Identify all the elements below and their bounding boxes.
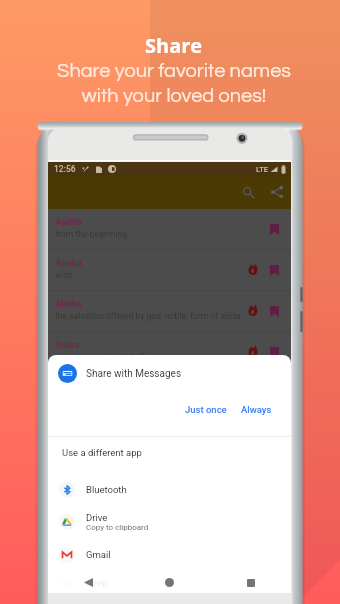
staticText: LTE	[256, 165, 268, 174]
staticText: from the beginning	[55, 229, 128, 239]
staticText: grace, sweet faced, brilliance	[55, 352, 166, 362]
button[interactable]: Search	[234, 178, 262, 206]
staticText: Always	[241, 404, 272, 415]
staticText: Copy to clipboard	[86, 523, 149, 532]
staticText: Alisha	[55, 298, 82, 309]
button[interactable]: Share	[263, 178, 291, 206]
staticText: Aadita	[55, 216, 83, 227]
staticText: Keep	[86, 577, 108, 588]
staticText: Use a different app	[62, 447, 142, 458]
button[interactable]: Keep	[48, 571, 291, 593]
staticText: Bluetooth	[86, 484, 127, 495]
staticText: Gmail	[86, 549, 111, 560]
button[interactable]: Aesha	[48, 250, 291, 291]
staticText: wish	[55, 270, 73, 280]
button[interactable]: Gmail	[48, 538, 291, 571]
button[interactable]: Recents	[210, 572, 291, 593]
button[interactable]: Alisha	[48, 291, 291, 332]
button[interactable]: Aadita	[48, 209, 291, 250]
button[interactable]: Anika	[48, 332, 291, 373]
staticText: Just once	[185, 404, 227, 415]
button[interactable]: Drive	[48, 505, 291, 538]
staticText: the salvation offered by god, noble, for…	[55, 311, 241, 321]
button[interactable]: Back	[48, 572, 129, 593]
button[interactable]: Bluetooth	[48, 474, 291, 505]
staticText: Share with Messages	[86, 368, 182, 380]
staticText: Share	[145, 32, 203, 59]
staticText: Aesha	[55, 257, 82, 268]
staticText: 12:56	[54, 164, 76, 174]
button[interactable]: Just once	[180, 399, 232, 420]
button[interactable]: Always	[236, 399, 277, 420]
staticText: Anika	[55, 339, 80, 350]
staticText: Share your favorite names with your love…	[57, 61, 291, 106]
staticText: Drive	[86, 512, 108, 523]
button[interactable]: Home	[129, 572, 210, 593]
